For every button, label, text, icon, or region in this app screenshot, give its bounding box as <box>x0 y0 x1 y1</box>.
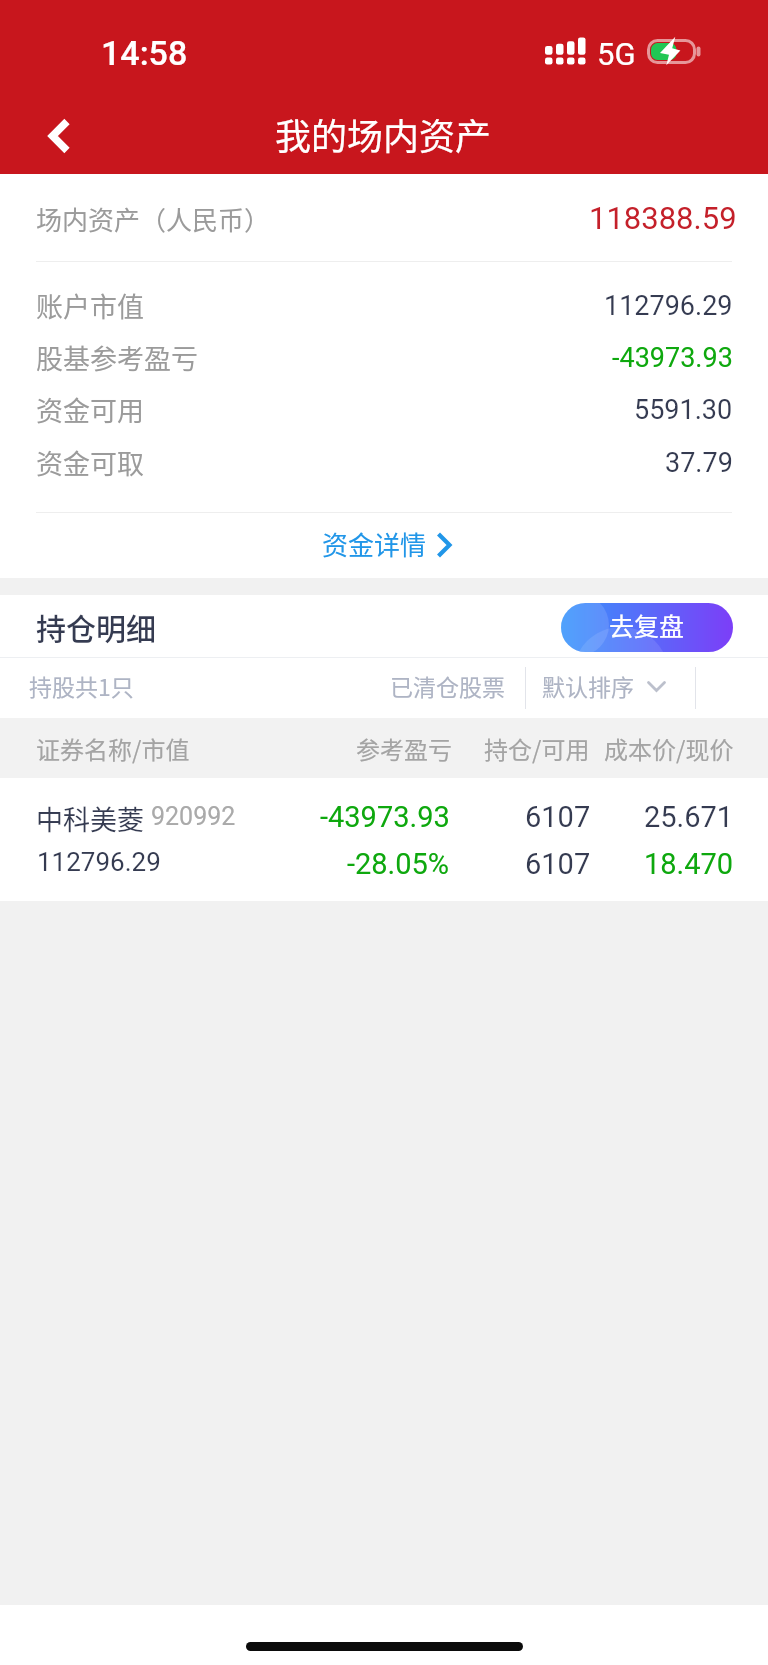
staticText: 112796.29 <box>604 290 733 322</box>
staticText: 6107 <box>525 847 591 881</box>
staticText: 18.470 <box>644 847 734 881</box>
staticText: 持仓明细 <box>36 605 156 648</box>
staticText: 已清仓股票 <box>390 669 505 702</box>
staticText: 资金详情 <box>322 525 427 563</box>
staticText: 14:58 <box>101 33 188 73</box>
staticText: 默认排序 <box>542 669 634 702</box>
staticText: 成本价/现价 <box>604 731 734 766</box>
staticText: 37.79 <box>665 447 733 479</box>
button[interactable]: 去复盘 <box>561 603 733 652</box>
staticText: -43973.93 <box>320 800 450 834</box>
staticText: 920992 <box>151 802 236 831</box>
staticText: 场内资产（人民币） <box>36 200 271 238</box>
button[interactable]: Back <box>26 100 98 172</box>
staticText: 账户市值 <box>36 286 144 325</box>
staticText: 股基参考盈亏 <box>36 338 198 377</box>
staticText: -28.05% <box>347 847 450 881</box>
staticText: 持股共1只 <box>29 669 134 702</box>
staticText: 5G <box>597 36 636 72</box>
staticText: 118388.59 <box>589 200 737 236</box>
staticText: 资金可用 <box>36 390 144 429</box>
button[interactable]: 中科美菱 <box>0 778 768 901</box>
staticText: 我的场内资产 <box>275 108 492 160</box>
staticText: 去复盘 <box>609 607 685 643</box>
staticText: 资金可取 <box>36 443 144 482</box>
staticText: 参考盈亏 <box>356 731 452 766</box>
staticText: 112796.29 <box>37 847 161 877</box>
staticText: 25.671 <box>644 800 734 834</box>
staticText: 5591.30 <box>634 394 733 426</box>
button[interactable]: 默认排序 <box>526 658 695 718</box>
staticText: -43973.93 <box>612 342 733 374</box>
staticText: 持仓/可用 <box>484 731 590 766</box>
staticText: 证券名称/市值 <box>36 731 190 766</box>
button[interactable]: 资金详情 <box>322 519 472 571</box>
staticText: 中科美菱 <box>36 799 144 838</box>
staticText: 6107 <box>525 800 591 834</box>
button[interactable]: 已清仓股票 <box>370 658 525 718</box>
